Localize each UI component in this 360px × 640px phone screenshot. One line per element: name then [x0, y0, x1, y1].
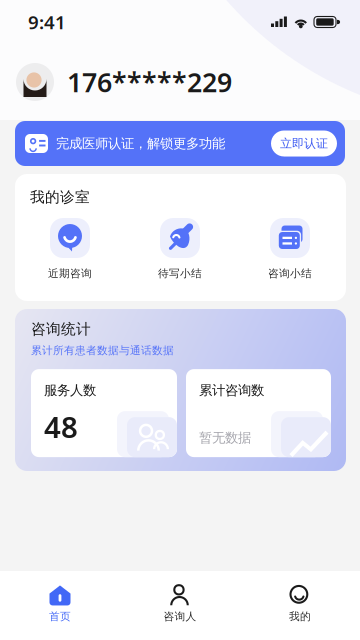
staticText: 176*****229 [67, 64, 232, 100]
staticText: 我的 [289, 610, 311, 623]
staticText: 累计咨询数 [199, 382, 264, 398]
staticText: 我的诊室 [30, 188, 90, 206]
button[interactable]: 首页 [0, 580, 120, 628]
button[interactable]: 咨询人 [120, 580, 240, 628]
staticText: 暂无数据 [199, 430, 251, 446]
staticText: 待写小结 [158, 267, 202, 280]
staticText: 近期咨询 [48, 267, 92, 280]
staticText: 首页 [49, 610, 71, 623]
button[interactable]: 近期咨询 [15, 218, 125, 280]
staticText: 服务人数 [44, 382, 96, 398]
staticText: 累计所有患者数据与通话数据 [31, 344, 174, 357]
staticText: 48 [44, 407, 78, 446]
button[interactable]: 待写小结 [125, 218, 235, 280]
button[interactable]: 咨询小结 [235, 218, 345, 280]
staticText: 咨询小结 [268, 267, 312, 280]
button[interactable]: 完成医师认证，解锁更多功能 [15, 121, 345, 166]
staticText: 咨询统计 [31, 320, 91, 338]
staticText: 完成医师认证，解锁更多功能 [56, 135, 225, 152]
staticText: 立即认证 [280, 136, 328, 151]
button[interactable]: 我的 [240, 580, 360, 628]
staticText: 咨询人 [163, 610, 196, 623]
staticText: 9:41 [28, 10, 66, 34]
